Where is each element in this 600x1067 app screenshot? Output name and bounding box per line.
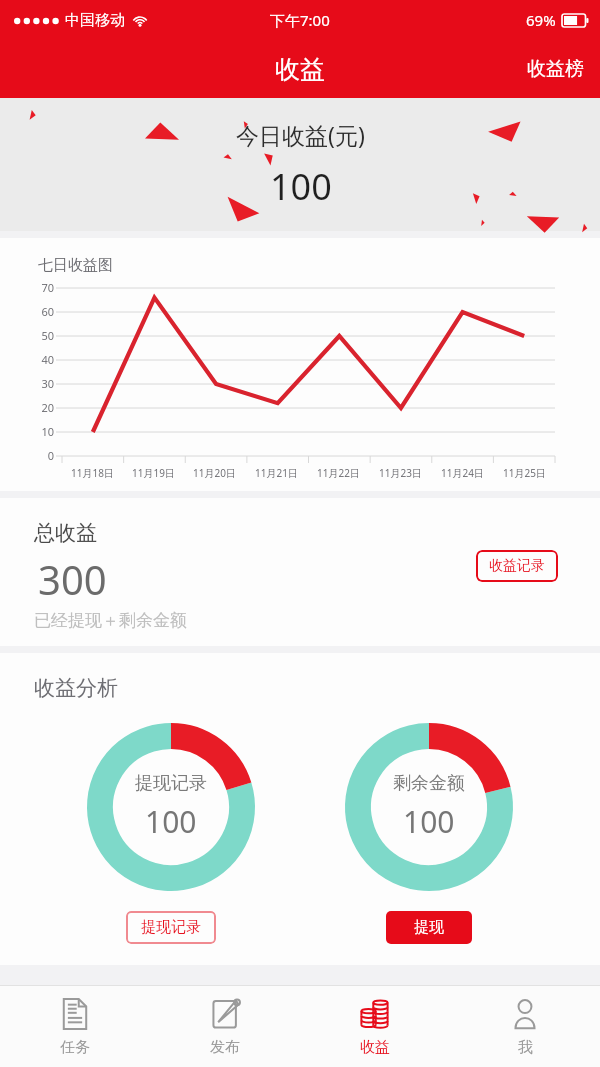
button[interactable]: 任务 [0,986,150,1067]
staticText: 70 [30,280,54,295]
staticText: 任务 [60,1038,90,1057]
staticText: 100 [403,801,455,842]
staticText: 我 [518,1038,533,1057]
staticText: 下午7:00 [270,10,330,30]
button[interactable]: 我 [450,986,600,1067]
staticText: 11月20日 [193,466,236,480]
staticText: 今日收益(元) [236,119,365,150]
staticText: 提现 [414,918,444,937]
staticText: 11月18日 [71,466,114,480]
staticText: 11月25日 [503,466,546,480]
staticText: 100 [145,801,197,842]
staticText: 11月21日 [255,466,298,480]
staticText: 收益 [275,54,325,85]
staticText: 60 [30,304,54,319]
staticText: 已经提现＋剩余金额 [34,610,187,631]
button[interactable]: 提现记录 [126,911,216,944]
staticText: 提现记录 [135,772,207,795]
staticText: 20 [30,400,54,415]
button[interactable]: 发布 [150,986,300,1067]
staticText: 11月19日 [132,466,175,480]
staticText: 30 [30,376,54,391]
staticText: 11月22日 [317,466,360,480]
staticText: 收益记录 [489,557,545,575]
staticText: 11月24日 [441,466,484,480]
staticText: 69% [526,10,556,30]
staticText: 50 [30,328,54,343]
staticText: 收益 [360,1038,390,1057]
staticText: 收益榜 [527,57,584,81]
staticText: 七日收益图 [38,256,113,275]
button[interactable]: 收益 [300,986,450,1067]
staticText: 100 [270,162,332,211]
staticText: 40 [30,352,54,367]
button[interactable]: 提现 [386,911,472,944]
staticText: 中国移动 [65,11,125,30]
staticText: 发布 [210,1038,240,1057]
staticText: 10 [30,424,54,439]
staticText: 总收益 [34,520,97,546]
staticText: 0 [30,448,54,463]
staticText: 提现记录 [141,918,201,937]
button[interactable]: 收益记录 [476,550,558,582]
button[interactable]: 收益榜 [511,45,600,93]
staticText: 收益分析 [34,675,118,701]
staticText: 11月23日 [379,466,422,480]
staticText: 剩余金额 [393,772,465,795]
staticText: 300 [38,552,107,606]
